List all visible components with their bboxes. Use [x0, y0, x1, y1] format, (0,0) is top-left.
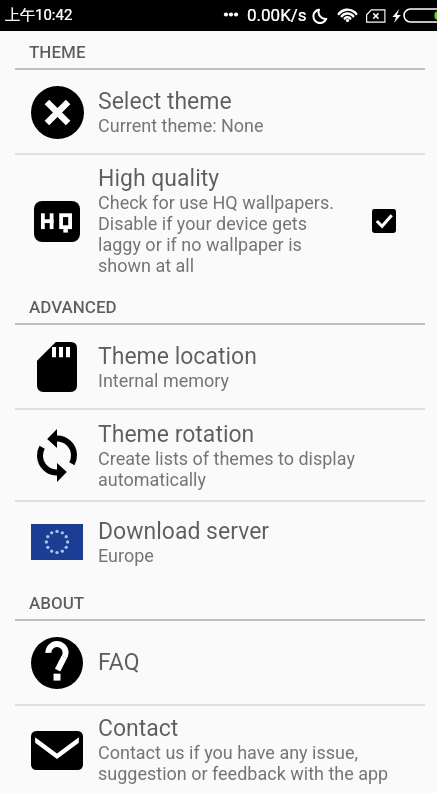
staticText: Download server	[98, 518, 270, 545]
button[interactable]: Theme rotation	[0, 410, 437, 500]
staticText: THEME	[29, 42, 86, 62]
button[interactable]: Theme location	[0, 325, 437, 408]
staticText: 上午10:42	[5, 6, 73, 25]
staticText: ABOUT	[29, 593, 85, 613]
button[interactable]: High quality	[0, 155, 437, 286]
button[interactable]: Contact	[0, 706, 437, 793]
staticText: Contact us if you have any issue, sugges…	[98, 742, 389, 784]
staticText: Create lists of themes to display automa…	[98, 448, 355, 490]
staticText: Select theme	[98, 88, 232, 115]
staticText: Internal memory	[98, 370, 230, 391]
staticText: Contact	[98, 715, 179, 742]
staticText: FAQ	[98, 649, 140, 676]
staticText: ADVANCED	[29, 297, 117, 317]
button[interactable]: Select theme	[0, 70, 437, 153]
button[interactable]: FAQ	[0, 621, 437, 704]
button[interactable]: Download server	[0, 502, 437, 582]
staticText: Check for use HQ wallpapers. Disable if …	[98, 192, 334, 276]
staticText: Theme rotation	[98, 421, 255, 448]
staticText: 0.00K/s	[247, 5, 307, 25]
staticText: Current theme: None	[98, 115, 264, 136]
staticText: Theme location	[98, 343, 257, 370]
staticText: High quality	[98, 165, 220, 192]
staticText: Europe	[98, 545, 154, 566]
